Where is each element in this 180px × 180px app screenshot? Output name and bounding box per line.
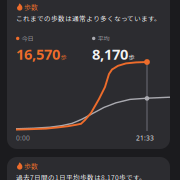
staticText: 16,570 bbox=[16, 44, 60, 64]
staticText: これまでの歩数は通常より多くなっています。 bbox=[16, 13, 161, 23]
staticText: 今日 bbox=[21, 34, 33, 43]
staticText: 歩 bbox=[128, 53, 134, 62]
staticText: 歩 bbox=[60, 53, 66, 62]
staticText: 21:33 bbox=[136, 133, 154, 142]
staticText: 8,170 bbox=[92, 44, 128, 64]
staticText: 0:00 bbox=[16, 133, 30, 142]
staticText: 歩数 bbox=[24, 161, 38, 171]
staticText: 歩数 bbox=[24, 2, 38, 12]
staticText: 平均 bbox=[97, 34, 109, 43]
staticText: 過去7日間の1日平均歩数は8,170歩です。 bbox=[16, 172, 146, 180]
